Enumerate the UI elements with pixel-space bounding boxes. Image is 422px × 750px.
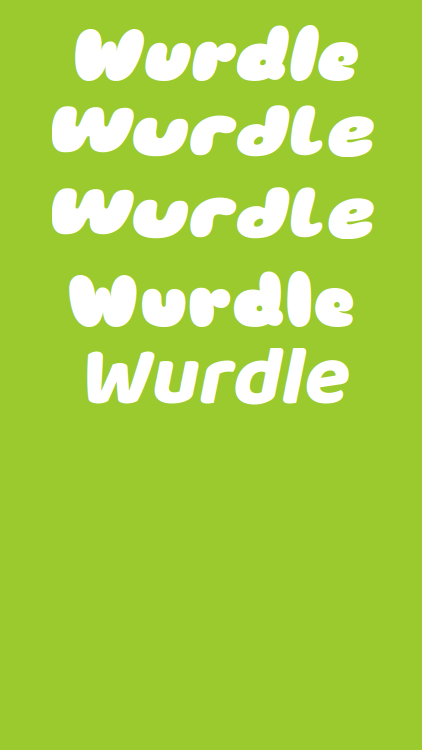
staticText: Wurdle (76, 313, 345, 455)
staticText: Wurdle (47, 105, 374, 171)
staticText: Wurdle (67, 11, 355, 101)
staticText: Wurdle (67, 257, 355, 347)
staticText: Wurdle (47, 187, 374, 253)
